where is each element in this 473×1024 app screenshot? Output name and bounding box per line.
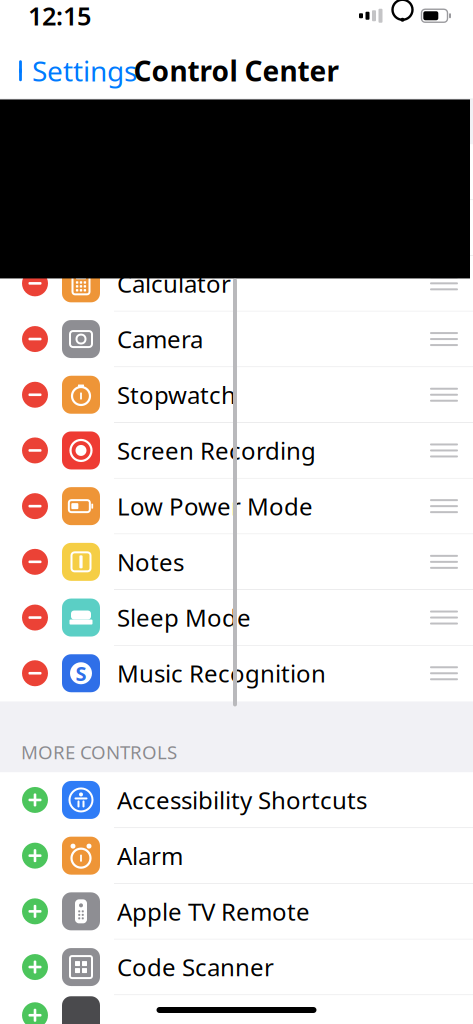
staticText: Music Recognition [117, 657, 326, 689]
staticText: Settings [32, 52, 137, 89]
button[interactable]: Stopwatch [0, 367, 473, 423]
button[interactable]: Code Scanner [0, 940, 473, 995]
button[interactable]: Settings [0, 46, 137, 95]
button[interactable]: Calculator [0, 256, 473, 311]
staticText: Low Power Mode [117, 490, 313, 522]
button[interactable]: Camera [0, 311, 473, 367]
staticText: Notes [117, 546, 184, 578]
button[interactable]: Timer [0, 200, 473, 256]
button[interactable]: Low Power Mode [0, 479, 473, 534]
staticText: Apple TV Remote [117, 895, 310, 927]
staticText: Code Scanner [117, 951, 274, 983]
staticText: Sleep Mode [117, 602, 251, 633]
staticText: MORE CONTROLS [21, 740, 177, 764]
staticText: Stopwatch [117, 379, 236, 411]
staticText: Calculator [117, 267, 231, 299]
button[interactable]: Apple TV Remote [0, 884, 473, 940]
staticText: Alarm [117, 840, 183, 872]
staticText: S [75, 660, 86, 687]
button[interactable]: Screen Recording [0, 423, 473, 479]
button[interactable]: Flashlight [0, 144, 473, 200]
staticText: Accessibility Shortcuts [117, 784, 367, 816]
staticText: Camera [117, 323, 203, 355]
button[interactable]: S [0, 646, 473, 701]
staticText: Control Center [133, 52, 339, 89]
staticText: 12:15 [28, 0, 91, 32]
button[interactable]: Accessibility Shortcuts [0, 772, 473, 828]
button[interactable]: Alarm [0, 828, 473, 884]
button[interactable]: Notes [0, 534, 473, 590]
button[interactable]: Sleep Mode [0, 590, 473, 646]
staticText: Screen Recording [117, 434, 316, 466]
